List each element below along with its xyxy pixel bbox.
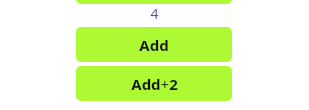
button[interactable]: Add+2 bbox=[76, 66, 232, 101]
button[interactable] bbox=[76, 0, 232, 4]
staticText: Add+2 bbox=[131, 74, 178, 94]
staticText: Add bbox=[139, 35, 169, 55]
staticText: 4 bbox=[150, 4, 159, 23]
button[interactable]: Add bbox=[76, 27, 232, 62]
